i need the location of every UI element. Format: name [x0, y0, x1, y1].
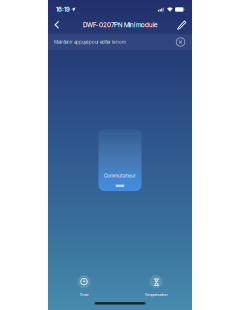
- staticText: Temporisation: [144, 292, 167, 297]
- staticText: DWF-0207PN Mini module: [83, 21, 157, 29]
- button[interactable]: Temporisation: [125, 273, 187, 299]
- button[interactable]: Back: [48, 17, 66, 33]
- button[interactable]: Timer: [53, 273, 115, 299]
- staticText: Maintenir appuyé pour éditer le nom: [54, 39, 126, 45]
- button[interactable]: Rename device: [173, 17, 191, 33]
- staticText: Timer: [79, 292, 88, 297]
- button[interactable]: Commutateur: [98, 129, 141, 191]
- staticText: 16:19: [56, 6, 70, 13]
- staticText: Commutateur: [104, 173, 136, 179]
- button[interactable]: Dismiss hint: [174, 35, 187, 48]
